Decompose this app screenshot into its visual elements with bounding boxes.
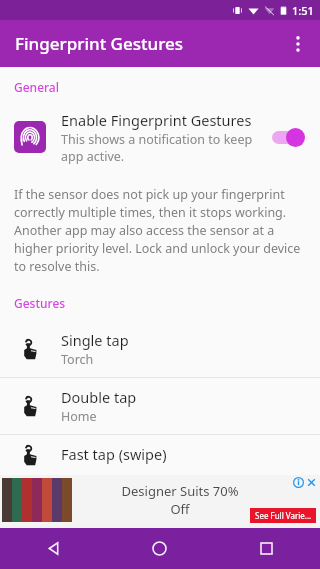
button[interactable]: Home <box>106 528 213 569</box>
staticText: Home <box>61 408 97 425</box>
staticText: Torch <box>61 351 94 368</box>
staticText: 1:51 <box>292 3 314 18</box>
button[interactable]: Back <box>0 528 106 569</box>
button[interactable]: Enable Fingerprint Gestures toggle <box>270 126 308 148</box>
staticText: Single tap <box>61 330 129 350</box>
staticText: Fingerprint Gestures <box>15 32 184 55</box>
button[interactable]: Single tap <box>0 321 320 377</box>
button[interactable]: Advertisement: Designer Suits 70% Off <box>0 475 320 528</box>
staticText: This shows a notification to keep app ac… <box>61 131 262 164</box>
staticText: Gestures <box>14 295 66 311</box>
button[interactable]: More options <box>276 20 320 67</box>
button[interactable]: Enable Fingerprint Gestures <box>0 104 320 170</box>
staticText: Double tap <box>61 387 137 407</box>
button[interactable]: Fast tap (swipe) <box>0 435 320 475</box>
staticText: Fast tap (swipe) <box>61 444 167 464</box>
staticText: General <box>14 79 59 95</box>
staticText: See Full Varie... <box>255 510 312 521</box>
button[interactable]: Double tap <box>0 378 320 434</box>
staticText: If the sensor does not pick up your fing… <box>14 186 304 275</box>
button[interactable]: Recents <box>213 528 320 569</box>
staticText: Designer Suits 70% <box>121 482 239 500</box>
staticText: Off <box>170 500 190 518</box>
staticText: Enable Fingerprint Gestures <box>61 110 252 130</box>
